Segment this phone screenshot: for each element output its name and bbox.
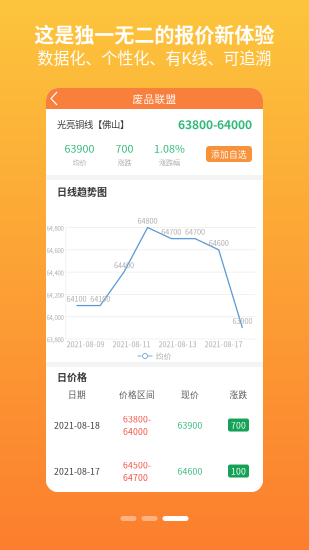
staticText: 均价 <box>72 157 86 167</box>
staticText: 2021-08-17 <box>54 465 100 477</box>
staticText: 1.08% <box>154 140 185 156</box>
staticText: 63800-64000 <box>178 115 252 133</box>
staticText: 现价 <box>181 388 199 401</box>
staticText: 2021-08-11 <box>112 339 150 349</box>
staticText: 64100 <box>66 293 86 304</box>
button[interactable]: 返回 <box>46 88 68 109</box>
staticText: 64800 <box>138 215 158 226</box>
staticText: 63900 <box>177 419 202 431</box>
staticText: 2021-08-13 <box>158 339 196 349</box>
staticText: 均价 <box>155 350 171 362</box>
staticText: 2021-08-09 <box>66 339 104 349</box>
staticText: 这是独一无二的报价新体验 <box>34 19 274 48</box>
staticText: 64400 <box>114 260 134 270</box>
staticText: 2021-08-17 <box>204 339 242 349</box>
staticText: 价格区间 <box>119 388 155 401</box>
staticText: 64700 <box>161 226 181 237</box>
staticText: 64500- 64700 <box>123 458 151 484</box>
staticText: 64,800 <box>46 224 63 233</box>
staticText: 63900 <box>232 315 252 326</box>
staticText: 700 <box>231 419 246 431</box>
staticText: 64,400 <box>46 268 63 277</box>
staticText: 64,600 <box>46 246 63 255</box>
staticText: 63900 <box>64 140 94 156</box>
staticText: 64,000 <box>46 313 63 322</box>
staticText: 添加自选 <box>211 148 247 160</box>
button[interactable]: 添加自选 <box>206 146 252 162</box>
staticText: 日线趋势图 <box>57 184 107 199</box>
staticText: 光亮铜线【佛山】 <box>57 117 129 131</box>
staticText: 64600 <box>209 237 229 248</box>
staticText: 2021-08-18 <box>54 419 100 431</box>
staticText: 63,800 <box>46 335 63 344</box>
staticText: 100 <box>231 465 246 477</box>
staticText: 涨跌 <box>229 388 247 401</box>
staticText: 废品联盟 <box>132 91 176 106</box>
staticText: 64100 <box>90 293 110 304</box>
staticText: 700 <box>115 140 133 156</box>
staticText: 数据化、个性化、有K线、可追溯 <box>37 45 271 69</box>
staticText: 日期 <box>68 388 86 401</box>
staticText: 64600 <box>177 465 202 477</box>
staticText: 63800- 64000 <box>123 412 151 438</box>
staticText: 64,200 <box>46 291 63 299</box>
staticText: 64700 <box>185 226 205 237</box>
staticText: 涨跌幅 <box>159 157 180 167</box>
staticText: 涨跌 <box>117 157 131 167</box>
staticText: 日价格 <box>57 370 87 384</box>
